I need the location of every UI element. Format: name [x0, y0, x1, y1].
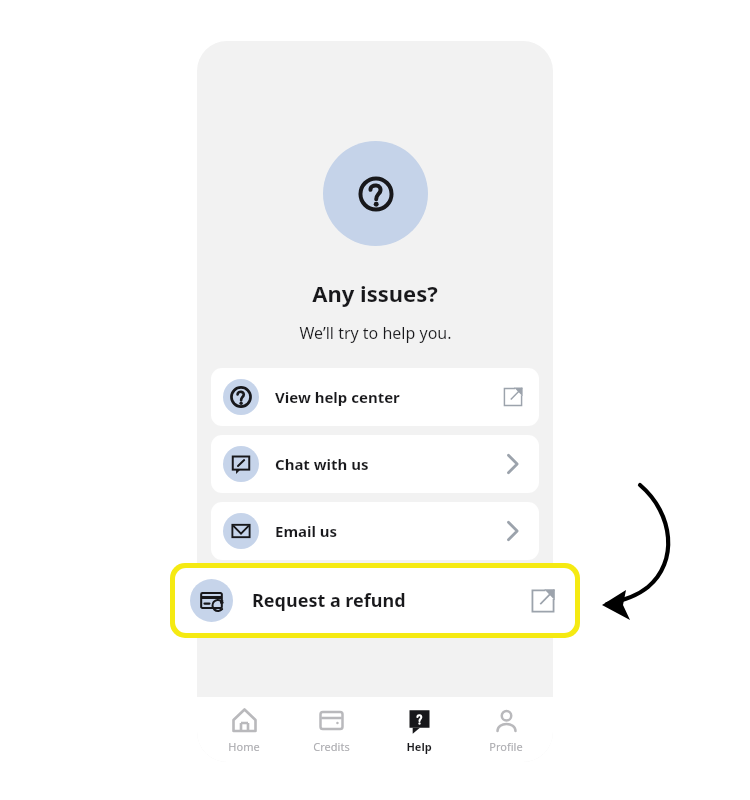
staticText: Chat with us: [275, 454, 369, 474]
button[interactable]: Profile: [466, 708, 546, 754]
other: Open link: [527, 585, 559, 617]
other: Open: [500, 451, 526, 477]
button[interactable]: Email us: [211, 502, 539, 560]
button[interactable]: Help: [379, 708, 459, 754]
staticText: Credits: [313, 739, 350, 754]
staticText: Any issues?: [312, 278, 438, 308]
button[interactable]: Home: [204, 708, 284, 754]
button[interactable]: Chat with us: [211, 435, 539, 493]
button[interactable]: Request a refund: [175, 568, 575, 633]
other: Open link: [500, 384, 526, 410]
staticText: Home: [228, 739, 260, 754]
staticText: Request a refund: [252, 588, 406, 613]
button[interactable]: Credits: [291, 708, 371, 754]
staticText: Help: [406, 739, 432, 754]
staticText: View help center: [275, 387, 400, 407]
button[interactable]: View help center: [211, 368, 539, 426]
other: Open: [500, 518, 526, 544]
staticText: Email us: [275, 521, 338, 541]
staticText: We’ll try to help you.: [299, 322, 452, 344]
staticText: Profile: [489, 739, 523, 754]
